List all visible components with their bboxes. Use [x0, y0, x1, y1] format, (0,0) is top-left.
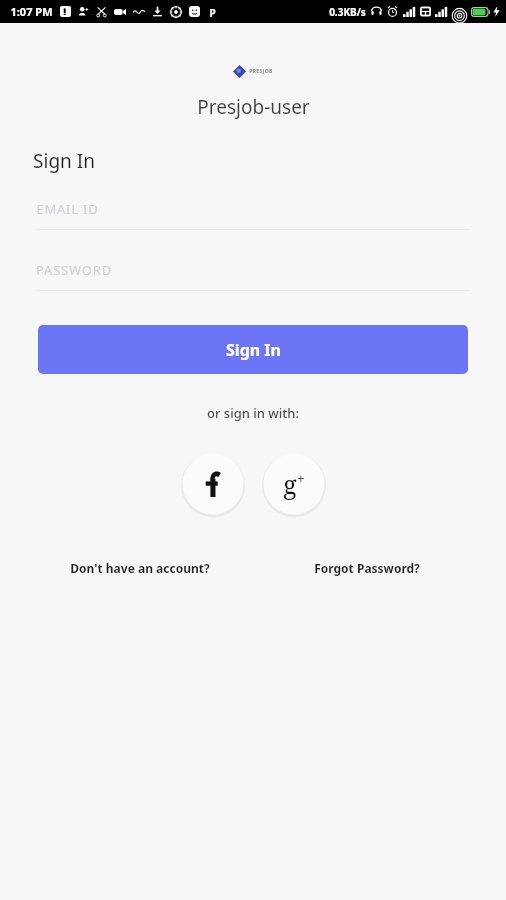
staticText: P	[209, 6, 216, 17]
button[interactable]: EMAIL ID	[36, 200, 470, 230]
staticText: Presjob-user	[197, 94, 310, 120]
button[interactable]: Sign in with Google	[262, 452, 326, 516]
staticText: Don't have an account?	[70, 560, 210, 576]
button[interactable]: Don't have an account?	[26, 560, 253, 576]
staticText: PRESJOB	[249, 68, 273, 75]
button[interactable]: Forgot Password?	[253, 560, 480, 576]
button[interactable]: Sign in with Facebook	[181, 452, 245, 516]
staticText: Sign In	[33, 148, 95, 174]
staticText: g	[283, 467, 297, 501]
staticText: PASSWORD	[36, 261, 112, 279]
staticText: 1:07 PM	[10, 4, 53, 19]
staticText: or sign in with:	[207, 404, 299, 422]
button[interactable]: PASSWORD	[36, 261, 470, 291]
staticText: Forgot Password?	[314, 560, 420, 576]
staticText: 0.3KB/s	[329, 5, 366, 19]
button[interactable]: Sign In	[38, 325, 468, 374]
staticText: EMAIL ID	[36, 200, 99, 218]
staticText: Sign In	[226, 339, 281, 361]
staticText: +	[297, 469, 305, 488]
